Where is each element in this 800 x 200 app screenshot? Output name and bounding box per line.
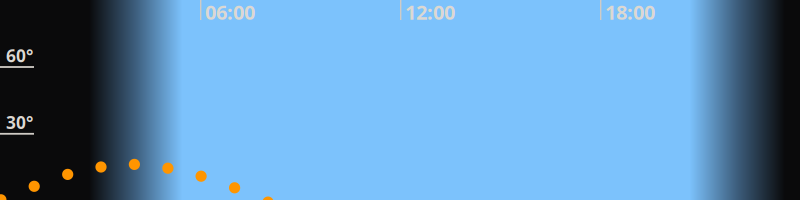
staticText: 06:00 (205, 0, 255, 25)
staticText: 18:00 (605, 0, 655, 25)
staticText: 60° (6, 44, 33, 67)
staticText: 12:00 (405, 0, 455, 25)
staticText: 30° (6, 111, 33, 134)
